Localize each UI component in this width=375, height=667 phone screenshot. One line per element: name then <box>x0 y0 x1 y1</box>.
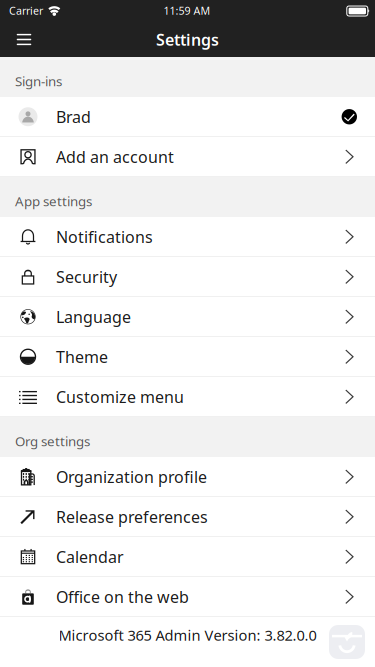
button[interactable]: Office on the web <box>0 577 375 617</box>
staticText: Office on the web <box>56 586 189 607</box>
button[interactable]: Theme <box>0 337 375 377</box>
staticText: Calendar <box>56 546 124 567</box>
button[interactable]: Calendar <box>0 537 375 577</box>
staticText: Security <box>56 266 117 287</box>
staticText: Sign-ins <box>15 72 62 90</box>
staticText: Brad <box>56 106 91 127</box>
button[interactable]: Security <box>0 257 375 297</box>
staticText: Organization profile <box>56 466 207 487</box>
button[interactable]: Customize menu <box>0 377 375 417</box>
staticText: Settings <box>156 29 219 50</box>
staticText: Org settings <box>15 432 90 450</box>
button[interactable]: Brad <box>0 97 375 137</box>
button[interactable]: Notifications <box>0 217 375 257</box>
staticText: Microsoft 365 Admin Version: 3.82.0.0 <box>58 625 316 645</box>
button[interactable]: Menu <box>5 22 43 57</box>
button[interactable]: Organization profile <box>0 457 375 497</box>
staticText: Add an account <box>56 146 174 167</box>
button[interactable]: Release preferences <box>0 497 375 537</box>
staticText: 11:59 AM <box>163 3 210 18</box>
button[interactable]: Language <box>0 297 375 337</box>
staticText: App settings <box>15 192 92 210</box>
staticText: Language <box>56 306 131 327</box>
staticText: Theme <box>56 346 108 367</box>
staticText: Notifications <box>56 226 153 247</box>
button[interactable]: Add an account <box>0 137 375 177</box>
staticText: Carrier <box>9 3 43 18</box>
staticText: Release preferences <box>56 506 208 527</box>
staticText: Customize menu <box>56 386 184 407</box>
